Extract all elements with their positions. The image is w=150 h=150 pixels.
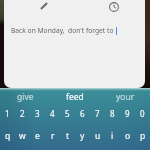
button[interactable]: 7	[90, 106, 105, 121]
staticText: e	[35, 130, 40, 142]
button[interactable]: History	[106, 0, 122, 15]
button[interactable]: y	[75, 123, 90, 149]
button[interactable]: w	[15, 123, 30, 149]
staticText: 9	[125, 108, 130, 119]
button[interactable]: p	[135, 123, 150, 149]
button[interactable]: feed	[50, 88, 100, 106]
button[interactable]: u	[90, 123, 105, 149]
button[interactable]: your	[100, 88, 150, 106]
button[interactable]: 6	[75, 106, 90, 121]
button[interactable]: 4	[45, 106, 60, 121]
staticText: 5	[65, 108, 70, 119]
button[interactable]: 2	[15, 106, 30, 121]
staticText: 0	[140, 108, 145, 119]
button[interactable]: 1	[0, 106, 15, 121]
staticText: o	[125, 130, 131, 142]
button[interactable]: 9	[120, 106, 135, 121]
staticText: Back on Monday, don't forget to	[11, 26, 116, 35]
staticText: 3	[35, 108, 40, 119]
button[interactable]: q	[0, 123, 15, 149]
staticText: t	[66, 130, 70, 142]
button[interactable]: give	[0, 88, 50, 106]
button[interactable]: e	[30, 123, 45, 149]
button[interactable]: 5	[60, 106, 75, 121]
staticText: y	[80, 130, 85, 142]
button[interactable]: o	[120, 123, 135, 149]
staticText: 7	[95, 108, 100, 119]
staticText: r	[51, 130, 55, 142]
staticText: 6	[80, 108, 85, 119]
staticText: give	[17, 91, 34, 103]
staticText: 8	[110, 108, 115, 119]
button[interactable]: 8	[105, 106, 120, 121]
button[interactable]: 0	[135, 106, 150, 121]
staticText: q	[5, 130, 11, 142]
button[interactable]: t	[60, 123, 75, 149]
button[interactable]: i	[105, 123, 120, 149]
staticText: w	[19, 130, 26, 142]
staticText: i	[111, 130, 114, 142]
button[interactable]: 3	[30, 106, 45, 121]
staticText: u	[95, 130, 101, 142]
staticText: p	[140, 130, 146, 142]
button[interactable]: r	[45, 123, 60, 149]
staticText: 4	[50, 108, 55, 119]
staticText: feed	[66, 91, 84, 103]
staticText: 1	[5, 108, 10, 119]
staticText: 2	[20, 108, 25, 119]
button[interactable]: Edit	[36, 0, 52, 14]
staticText: your	[116, 91, 135, 103]
